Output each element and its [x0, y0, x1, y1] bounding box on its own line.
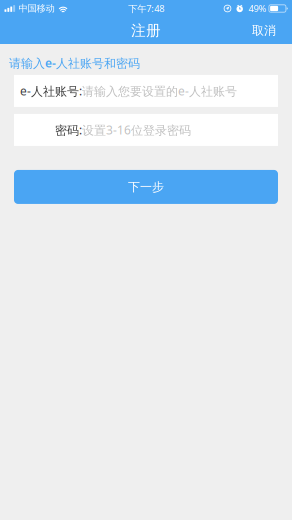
staticText: 下午7:48: [128, 2, 164, 15]
staticText: 49%: [248, 2, 266, 15]
staticText: 密码:: [55, 122, 82, 138]
staticText: 请输入e-人社账号和密码: [9, 55, 140, 71]
staticText: 取消: [252, 23, 276, 38]
staticText: 请输入您要设置的e-人社账号: [82, 83, 237, 99]
staticText: 注册: [131, 21, 161, 39]
staticText: 中国移动: [19, 3, 55, 14]
staticText: 设置3-16位登录密码: [82, 122, 191, 138]
button[interactable]: 下一步: [14, 170, 278, 204]
button[interactable]: 取消: [236, 17, 292, 44]
staticText: e-人社账号:: [20, 83, 82, 99]
staticText: 下一步: [128, 180, 164, 194]
